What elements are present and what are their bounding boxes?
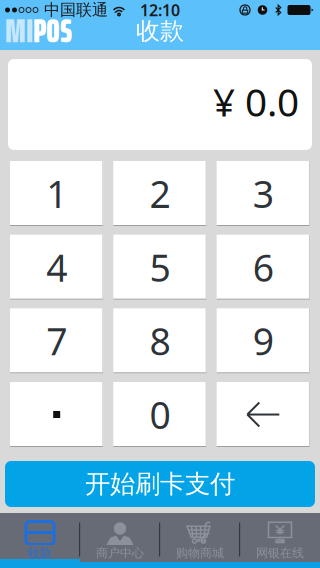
staticText: 1	[46, 169, 67, 218]
button[interactable]: 8	[113, 308, 207, 373]
staticText: 4	[46, 242, 67, 292]
button[interactable]: 开始刷卡支付	[0, 461, 320, 507]
staticText: 8	[149, 316, 170, 366]
staticText: 网银在线	[256, 546, 304, 560]
button[interactable]: 5	[113, 235, 207, 300]
staticText: 中国联通	[44, 0, 108, 20]
button[interactable]: 7	[10, 308, 103, 373]
button[interactable]: 购物商城	[160, 517, 240, 562]
staticText: 0	[149, 390, 170, 439]
staticText: 收款	[136, 16, 184, 46]
button[interactable]: 6	[217, 235, 310, 300]
button[interactable]: 4	[10, 235, 103, 300]
button[interactable]: 网银在线	[240, 517, 320, 562]
staticText: 7	[46, 316, 67, 366]
staticText: ¥ 0.0	[213, 76, 299, 127]
button[interactable]: 9	[217, 308, 310, 373]
staticText: 3	[253, 169, 274, 218]
button[interactable]: Decimal point	[10, 382, 103, 447]
staticText: 5	[149, 242, 170, 292]
staticText: 9	[253, 316, 274, 366]
button[interactable]: 0	[113, 382, 207, 447]
staticText: 商户中心	[96, 546, 144, 560]
button[interactable]: 1	[10, 161, 103, 226]
staticText: 6	[253, 242, 274, 292]
button[interactable]: Backspace	[217, 382, 310, 447]
button[interactable]: 收款	[0, 517, 80, 562]
button[interactable]: 商户中心	[80, 517, 160, 562]
button[interactable]: 3	[217, 161, 310, 226]
staticText: POS	[33, 6, 72, 56]
staticText: MI	[5, 6, 33, 56]
staticText: 12:10	[140, 0, 180, 21]
button[interactable]: 2	[113, 161, 207, 226]
staticText: 购物商城	[176, 546, 224, 560]
staticText: 2	[149, 169, 170, 218]
staticText: 收款	[28, 546, 52, 560]
staticText: 开始刷卡支付	[85, 468, 235, 499]
